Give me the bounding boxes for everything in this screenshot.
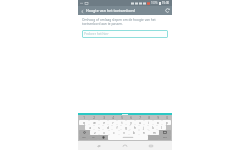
staticText: d [107,126,109,130]
staticText: 100% [151,1,158,5]
staticText: s [98,126,100,130]
button[interactable]: z [90,130,99,135]
button[interactable]: j [139,125,148,130]
staticText: z [94,131,96,135]
button[interactable]: Ent [159,135,171,140]
button[interactable]: 1 [79,116,89,120]
button[interactable]: n [139,130,149,135]
button[interactable]: i [144,120,153,125]
staticText: c [113,131,115,135]
button[interactable]: Ctrl [79,135,89,140]
staticText: 1 [83,116,85,120]
button[interactable]: a [85,125,94,130]
button[interactable]: Key [98,135,108,140]
button[interactable]: f [112,125,121,130]
button[interactable]: 8 [144,116,153,120]
staticText: 15:00 [162,1,170,5]
staticText: b [133,131,135,135]
button[interactable]: Back [78,7,86,15]
button[interactable]: Recents [146,141,156,150]
button[interactable]: r [108,120,117,125]
button[interactable]: 6 [126,116,135,120]
staticText: Ctrl [82,136,86,139]
button[interactable]: l [157,125,166,130]
button[interactable]: Key [79,130,90,135]
button[interactable]: x [99,130,109,135]
button[interactable]: Sy [89,135,98,140]
button[interactable]: s [94,125,103,130]
staticText: Omhoog of omlaag slepen om de hoogte van… [82,18,168,26]
staticText: m [153,131,156,135]
button[interactable]: c [109,130,119,135]
button[interactable]: 5 [117,116,126,120]
button[interactable]: m [149,130,159,135]
button[interactable]: d [103,125,112,130]
staticText: p [166,121,168,125]
button[interactable]: v [119,130,129,135]
button[interactable]: Reset [163,6,172,15]
staticText: l [161,126,162,130]
staticText: r [112,121,114,125]
staticText: u [139,121,141,125]
staticText: Sy [92,136,95,139]
staticText: f [116,126,118,130]
staticText: v [123,131,125,135]
staticText: 0 [166,116,168,120]
button[interactable]: 2 [89,116,99,120]
staticText: a [89,126,91,130]
button[interactable]: 0 [162,116,171,120]
staticText: w [93,121,96,125]
button[interactable]: b [129,130,139,135]
staticText: n [143,131,145,135]
button[interactable]: 7 [135,116,144,120]
button[interactable]: k [148,125,157,130]
staticText: g [125,126,127,130]
button[interactable]: e [99,120,108,125]
staticText: e [103,121,105,125]
staticText: 4 [112,116,114,120]
button[interactable]: y [126,120,135,125]
staticText: h [134,126,136,130]
staticText: j [143,126,144,130]
staticText: x [103,131,105,135]
button[interactable]: q [79,120,89,125]
staticText: 9 [157,116,159,120]
button[interactable]: o [153,120,162,125]
staticText: 5 [121,116,123,120]
staticText: q [83,121,85,125]
staticText: o [157,121,159,125]
button[interactable]: Key [108,135,148,140]
staticText: t [121,121,123,125]
button[interactable]: Home [120,141,130,150]
button[interactable]: 4 [108,116,117,120]
button[interactable]: Back [94,141,104,150]
staticText: k [152,126,154,130]
staticText: 6 [130,116,132,120]
button[interactable]: 3 [99,116,108,120]
staticText: Ent [163,136,167,139]
staticText: Probeer het hier [84,32,109,36]
staticText: 7 [139,116,141,120]
button[interactable]: h [130,125,139,130]
button[interactable]: w [89,120,99,125]
staticText: y [130,121,132,125]
staticText: 3 [103,116,105,120]
button[interactable]: 9 [153,116,162,120]
button[interactable]: Key [159,130,171,135]
button[interactable]: Probeer het hier [82,30,168,38]
button[interactable]: u [135,120,144,125]
button[interactable]: p [162,120,171,125]
staticText: 2 [93,116,95,120]
button[interactable]: t [117,120,126,125]
button[interactable]: g [121,125,130,130]
staticText: i [148,121,149,125]
staticText: Hoogte van het toetsenbord [86,8,135,13]
staticText: 8 [148,116,150,120]
